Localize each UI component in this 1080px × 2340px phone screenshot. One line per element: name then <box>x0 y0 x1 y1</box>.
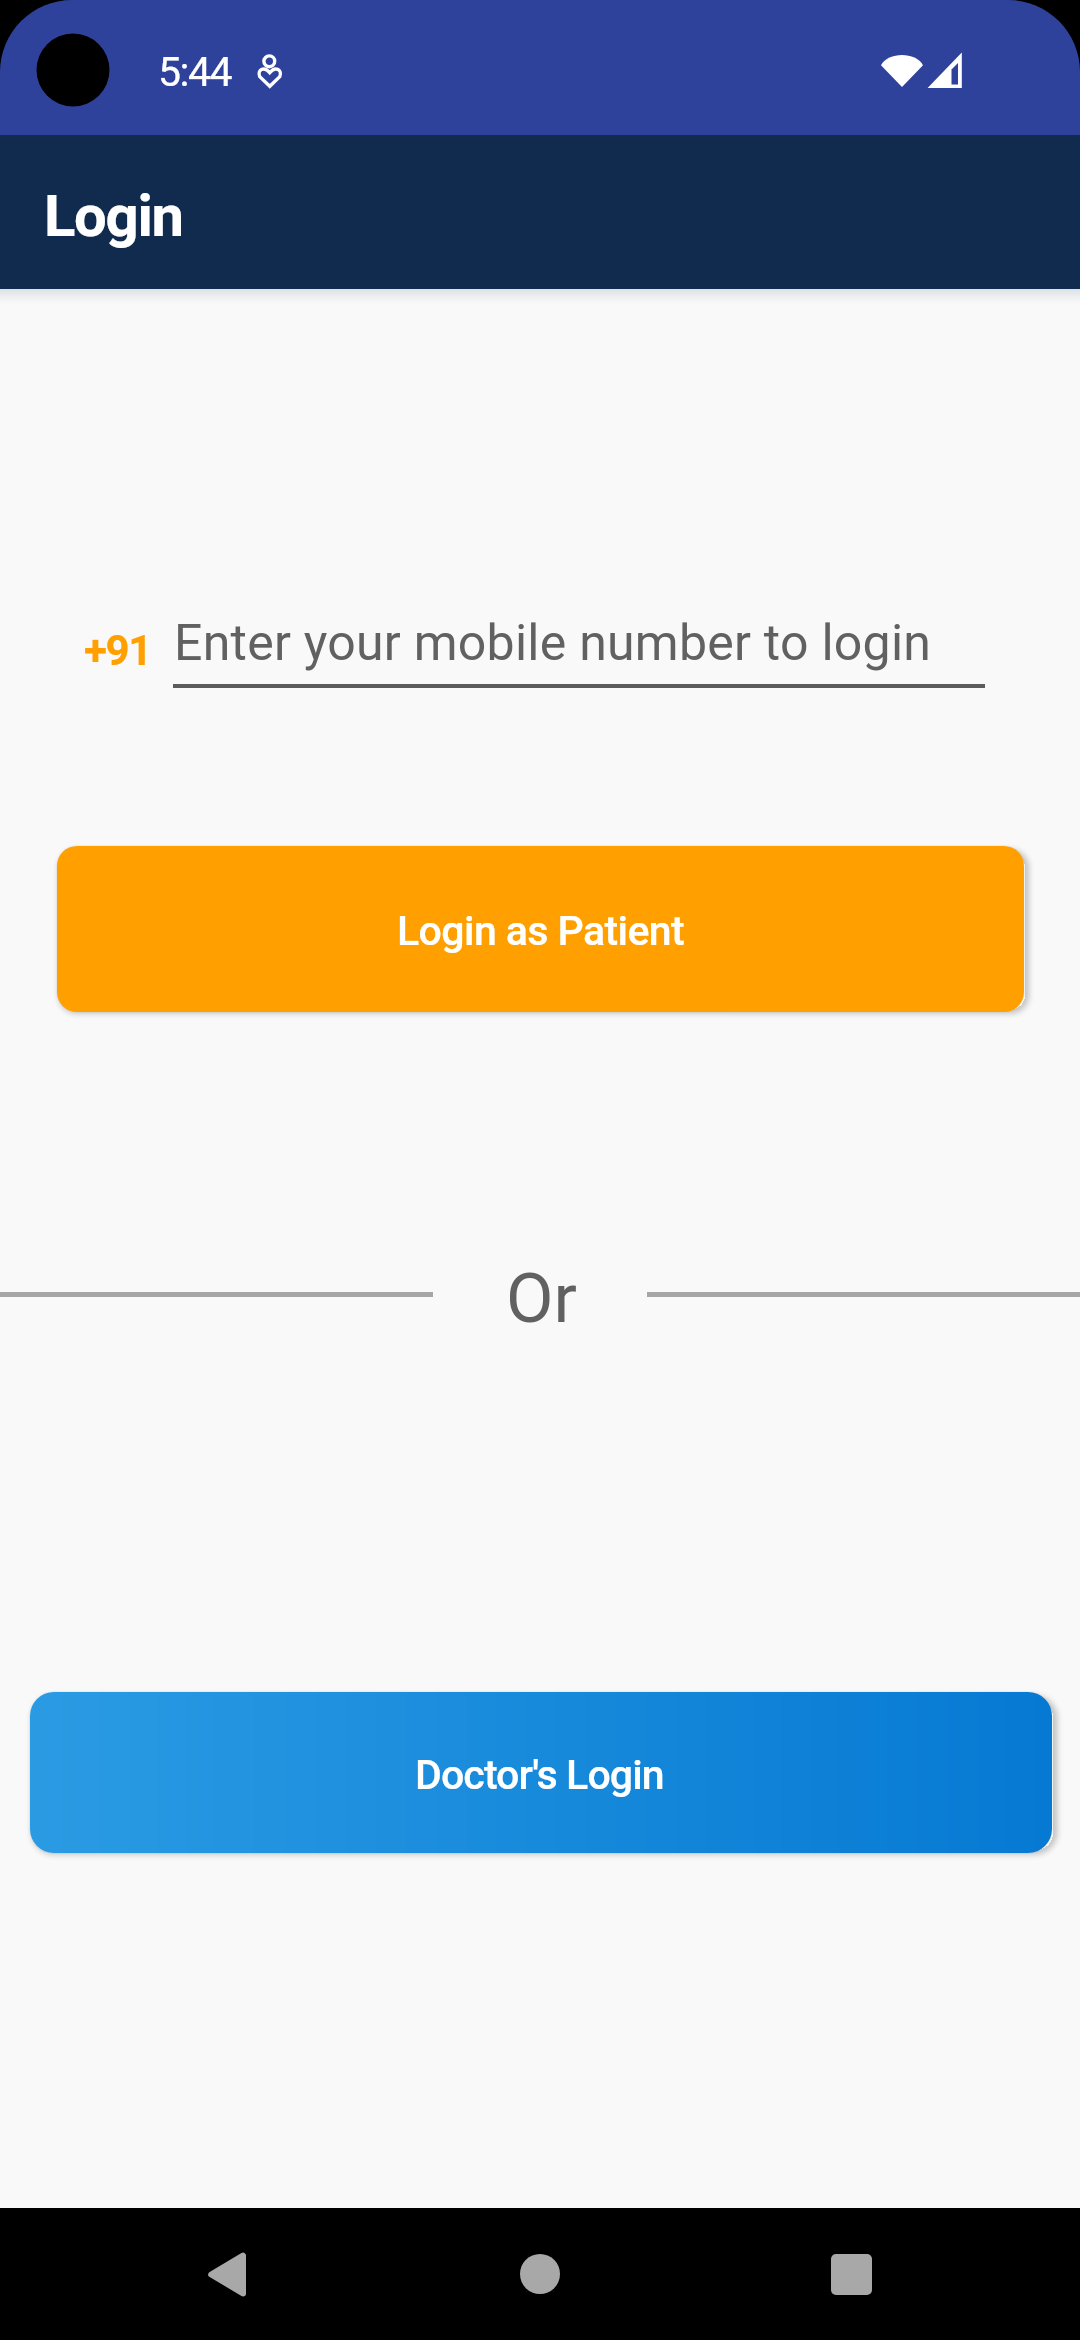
staticText: Login as Patient <box>397 907 685 955</box>
staticText: 5:44 <box>158 48 232 96</box>
button[interactable]: Back <box>166 2214 286 2334</box>
staticText: Doctor's Login <box>415 1751 664 1799</box>
button[interactable]: Recent apps <box>791 2214 911 2334</box>
button[interactable]: +91 <box>80 600 990 695</box>
button[interactable]: Doctor's Login <box>30 1692 1052 1853</box>
staticText: +91 <box>84 626 151 675</box>
button[interactable]: Home <box>480 2214 600 2334</box>
staticText: Login <box>44 182 183 250</box>
staticText: Or <box>506 1258 577 1339</box>
button[interactable]: Login as Patient <box>57 846 1024 1012</box>
staticText: Enter your mobile number to login <box>174 614 932 673</box>
